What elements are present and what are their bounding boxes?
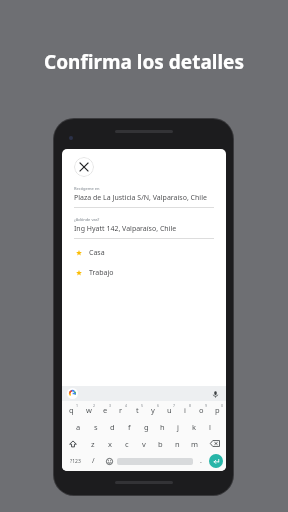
staticText: n [175,439,180,449]
button[interactable]: a [70,420,87,433]
staticText: Confirma los detalles [0,49,288,75]
button[interactable]: / [85,454,101,468]
button[interactable]: Voz [210,389,220,399]
staticText: i [184,405,186,415]
button[interactable]: ?123 [65,454,85,468]
button[interactable]: b [152,437,169,450]
staticText: 3 [109,403,112,408]
button[interactable]: h [154,420,170,433]
button[interactable]: z [84,437,101,450]
button[interactable]: v [135,437,152,450]
staticText: q [69,405,74,415]
staticText: r [119,405,123,415]
staticText: z [91,439,95,449]
button[interactable]: Borrar [203,437,226,450]
button[interactable]: Google [67,388,78,399]
button[interactable]: x [101,437,118,450]
staticText: t [136,405,139,415]
staticText: s [94,422,98,432]
staticText: c [125,439,129,449]
button[interactable]: k [186,420,202,433]
button[interactable]: m [186,437,203,450]
staticText: d [110,422,115,432]
button[interactable]: Casa [62,248,226,258]
staticText: 4 [125,403,128,408]
staticText: 1 [76,403,79,408]
staticText: ¿Adónde vas? [74,217,100,222]
staticText: 6 [157,403,160,408]
button[interactable]: Cerrar [74,157,94,177]
staticText: f [128,422,131,432]
staticText: . [200,456,202,466]
button[interactable]: q [63,403,80,416]
button[interactable]: w [80,403,97,416]
button[interactable]: Trabajo [62,268,226,278]
staticText: l [209,422,211,432]
button[interactable]: j [170,420,186,433]
staticText: / [92,456,95,466]
button[interactable]: s [87,420,104,433]
button[interactable]: f [121,420,138,433]
button[interactable]: o [193,403,209,416]
button[interactable]: l [202,420,218,433]
staticText: 5 [141,403,144,408]
button[interactable]: g [138,420,154,433]
staticText: g [144,422,149,432]
staticText: e [103,405,108,415]
button[interactable]: d [104,420,121,433]
staticText: 2 [93,403,96,408]
staticText: Casa [89,248,105,258]
button[interactable]: . [193,454,209,468]
staticText: x [108,439,112,449]
staticText: Ing Hyatt 142, Valparaíso, Chile [74,224,177,234]
button[interactable]: Recógeme en [62,186,226,208]
staticText: m [191,439,199,449]
staticText: h [160,422,165,432]
button[interactable]: i [177,403,193,416]
button[interactable]: ¿Adónde vas? [62,217,226,239]
button[interactable]: Emoji [101,454,117,468]
staticText: 0 [221,403,224,408]
button[interactable]: n [169,437,186,450]
button[interactable]: c [118,437,135,450]
staticText: b [158,439,163,449]
staticText: o [199,405,204,415]
staticText: y [151,405,155,415]
staticText: 9 [205,403,208,408]
staticText: 7 [173,403,176,408]
staticText: p [215,405,220,415]
staticText: Plaza de La Justicia S/N, Valparaíso, Ch… [74,193,207,203]
staticText: Trabajo [89,268,114,278]
staticText: ?123 [70,458,81,465]
staticText: a [76,422,81,432]
staticText: w [86,405,92,415]
staticText: u [167,405,172,415]
button[interactable]: y [145,403,161,416]
button[interactable]: Intro [209,454,223,468]
button[interactable]: u [161,403,177,416]
button[interactable]: Mayúsculas [62,437,84,450]
staticText: v [142,439,146,449]
staticText: 8 [189,403,192,408]
staticText: Recógeme en [74,186,100,191]
button[interactable]: r [113,403,129,416]
button[interactable]: e [97,403,113,416]
button[interactable]: t [129,403,145,416]
staticText: k [192,422,197,432]
staticText: j [177,422,179,432]
button[interactable]: p [209,403,225,416]
